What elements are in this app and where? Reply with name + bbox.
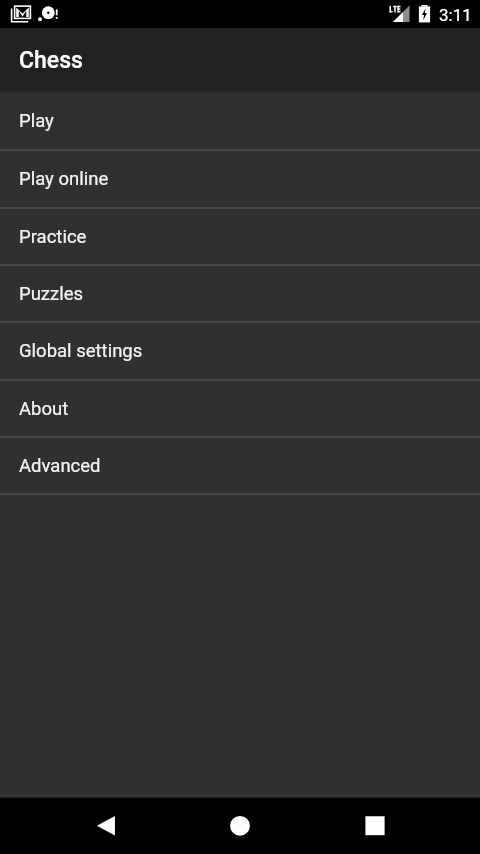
button[interactable]: Home xyxy=(168,798,312,854)
button[interactable]: Recent apps xyxy=(312,798,480,854)
staticText: 3:11 xyxy=(439,5,472,25)
staticText: About xyxy=(19,398,69,420)
button[interactable]: Play online xyxy=(0,151,480,207)
staticText: Play xyxy=(19,110,54,132)
button[interactable]: Play xyxy=(0,93,480,149)
button[interactable]: About xyxy=(0,381,480,436)
button[interactable]: Global settings xyxy=(0,323,480,379)
button[interactable]: Practice xyxy=(0,209,480,264)
button[interactable]: Advanced xyxy=(0,438,480,493)
staticText: Play online xyxy=(19,168,109,190)
staticText: Chess xyxy=(19,47,83,74)
button[interactable]: Back xyxy=(0,798,168,854)
staticText: Advanced xyxy=(19,455,101,477)
staticText: Global settings xyxy=(19,340,143,362)
staticText: Puzzles xyxy=(19,283,84,305)
staticText: Practice xyxy=(19,226,87,248)
button[interactable]: Puzzles xyxy=(0,266,480,321)
